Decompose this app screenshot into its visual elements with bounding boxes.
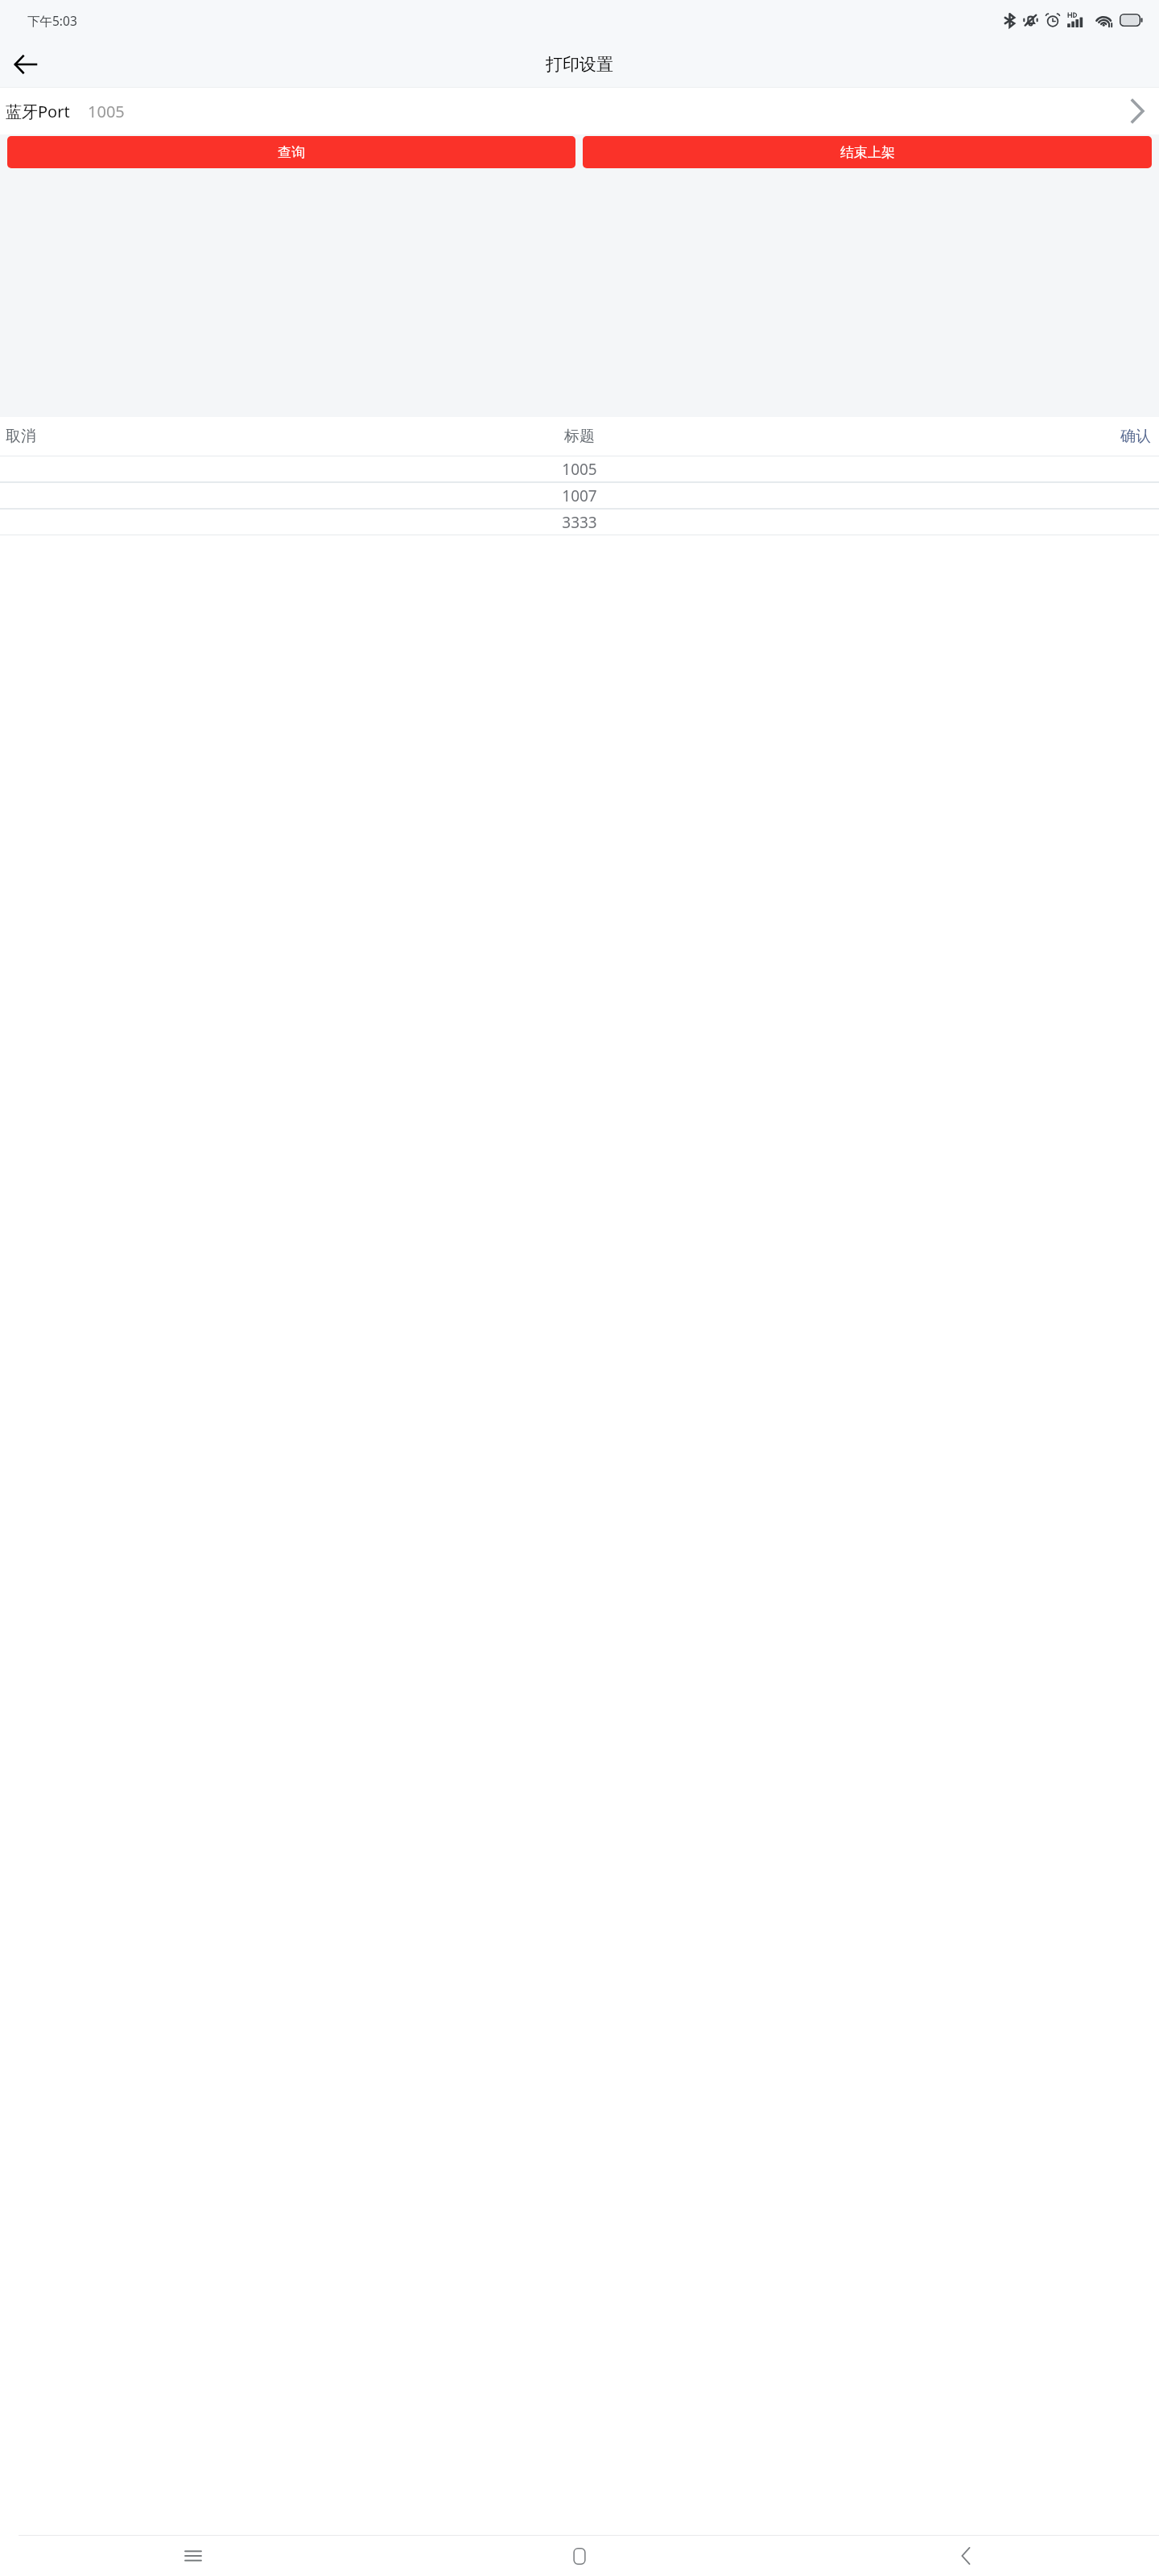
button[interactable]: Recents: [0, 2536, 386, 2576]
button[interactable]: 取消: [0, 417, 386, 456]
staticText: 3333: [562, 512, 597, 533]
staticText: 取消: [6, 427, 36, 446]
button[interactable]: Home: [386, 2536, 773, 2576]
button[interactable]: 蓝牙Port: [0, 88, 1159, 134]
staticText: 结束上架: [840, 144, 895, 161]
button[interactable]: Back: [773, 2536, 1159, 2576]
button[interactable]: 确认: [773, 417, 1159, 456]
staticText: 查询: [278, 144, 305, 161]
staticText: 打印设置: [546, 54, 613, 75]
button[interactable]: 1005: [0, 456, 1159, 482]
staticText: 下午5:03: [27, 12, 77, 29]
button[interactable]: Back: [6, 44, 45, 84]
button[interactable]: 查询: [7, 136, 575, 168]
button[interactable]: 3333: [0, 509, 1159, 535]
staticText: 1007: [562, 485, 597, 506]
staticText: 蓝牙Port: [6, 101, 70, 122]
staticText: 确认: [1120, 427, 1151, 446]
button[interactable]: 1007: [0, 482, 1159, 509]
staticText: 标题: [564, 427, 595, 446]
staticText: 1005: [88, 101, 125, 122]
staticText: 1005: [562, 459, 597, 480]
button[interactable]: 结束上架: [583, 136, 1152, 168]
